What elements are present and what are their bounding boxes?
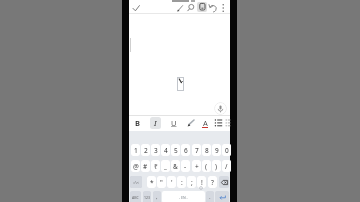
button[interactable]: I bbox=[151, 117, 159, 129]
button[interactable]: U bbox=[170, 117, 178, 129]
button[interactable]: ; bbox=[187, 176, 196, 188]
button[interactable] bbox=[131, 3, 141, 13]
button[interactable]: 8 bbox=[202, 144, 211, 156]
button[interactable] bbox=[214, 118, 223, 128]
button[interactable]: ' bbox=[167, 176, 176, 188]
button[interactable] bbox=[225, 118, 231, 128]
button[interactable]: . bbox=[206, 191, 214, 202]
staticText: ₹ bbox=[154, 162, 158, 171]
staticText: # bbox=[143, 162, 148, 171]
button[interactable]: 6 bbox=[181, 144, 190, 156]
staticText: - EN - bbox=[179, 195, 188, 200]
button[interactable]: , bbox=[153, 191, 161, 202]
button[interactable]: 7 bbox=[192, 144, 201, 156]
button[interactable]: 4 bbox=[161, 144, 170, 156]
button[interactable]: - bbox=[181, 160, 190, 172]
staticText: , bbox=[156, 193, 158, 201]
staticText: U bbox=[171, 118, 177, 128]
staticText: =\< bbox=[133, 180, 140, 185]
button[interactable]: _ bbox=[161, 160, 170, 172]
staticText: 7 bbox=[195, 146, 199, 155]
staticText: 0 bbox=[225, 146, 229, 155]
button[interactable]: ( bbox=[202, 160, 211, 172]
button[interactable]: =\< bbox=[130, 176, 142, 188]
button[interactable]: ₹ bbox=[151, 160, 160, 172]
button[interactable] bbox=[186, 118, 196, 129]
staticText: ; bbox=[191, 178, 193, 187]
button[interactable]: 9 bbox=[212, 144, 221, 156]
button[interactable] bbox=[215, 191, 229, 202]
staticText: & bbox=[173, 162, 178, 171]
button[interactable]: : bbox=[177, 176, 186, 188]
staticText: A bbox=[203, 118, 208, 128]
button[interactable]: * bbox=[147, 176, 156, 188]
button[interactable]: # bbox=[141, 160, 150, 172]
staticText: 1 bbox=[134, 146, 138, 155]
staticText: - bbox=[184, 162, 187, 171]
button[interactable] bbox=[197, 2, 207, 12]
button[interactable]: / bbox=[222, 160, 231, 172]
button[interactable]: 1 bbox=[131, 144, 140, 156]
staticText: 9 bbox=[215, 146, 219, 155]
staticText: ! bbox=[201, 178, 203, 187]
button[interactable]: 3 bbox=[151, 144, 160, 156]
staticText: 6 bbox=[184, 146, 188, 155]
staticText: ABC bbox=[132, 195, 139, 200]
staticText: * bbox=[150, 178, 154, 187]
staticText: B bbox=[135, 118, 140, 128]
staticText: 2 bbox=[144, 146, 148, 155]
button[interactable]: @ bbox=[131, 160, 140, 172]
staticText: ' bbox=[171, 178, 173, 187]
staticText: 5 bbox=[174, 146, 178, 155]
button[interactable]: 123 bbox=[143, 191, 151, 202]
staticText: @ bbox=[133, 162, 139, 171]
staticText: 8 bbox=[205, 146, 209, 155]
staticText: " bbox=[160, 178, 163, 187]
button[interactable] bbox=[220, 3, 227, 13]
staticText: 3 bbox=[154, 146, 158, 155]
button[interactable]: ? bbox=[208, 176, 217, 188]
button[interactable] bbox=[176, 3, 186, 13]
staticText: 4 bbox=[164, 146, 168, 155]
button[interactable]: ) bbox=[212, 160, 221, 172]
staticText: . bbox=[209, 193, 211, 201]
button[interactable]: & bbox=[171, 160, 180, 172]
button[interactable]: - EN - bbox=[162, 191, 205, 202]
button[interactable]: A bbox=[201, 117, 209, 129]
staticText: ) bbox=[215, 162, 218, 171]
button[interactable]: ! bbox=[197, 176, 206, 188]
staticText: ? bbox=[211, 178, 214, 187]
button[interactable]: 2 bbox=[141, 144, 150, 156]
button[interactable]: " bbox=[157, 176, 166, 188]
button[interactable] bbox=[219, 176, 229, 188]
button[interactable]: ABC bbox=[130, 191, 141, 202]
button[interactable]: 5 bbox=[171, 144, 180, 156]
button[interactable] bbox=[214, 102, 227, 115]
staticText: : bbox=[181, 178, 183, 187]
staticText: + bbox=[195, 162, 199, 171]
staticText: ( bbox=[205, 162, 208, 171]
button[interactable]: 0 bbox=[222, 144, 231, 156]
staticText: 123 bbox=[144, 195, 151, 200]
staticText: _ bbox=[164, 162, 167, 171]
staticText: I bbox=[154, 118, 157, 128]
button[interactable] bbox=[208, 3, 218, 13]
button[interactable]: B bbox=[133, 117, 141, 129]
button[interactable]: + bbox=[192, 160, 201, 172]
button[interactable] bbox=[186, 3, 196, 13]
staticText: / bbox=[225, 162, 228, 171]
